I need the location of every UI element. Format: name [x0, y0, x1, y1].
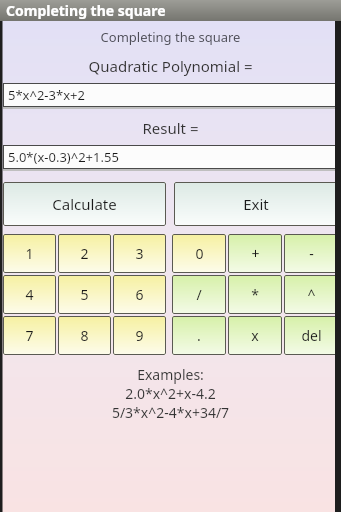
- staticText: *: [251, 285, 259, 304]
- staticText: 5.0*(x-0.3)^2+1.55: [8, 148, 119, 166]
- staticText: del: [301, 326, 322, 345]
- staticText: +: [251, 244, 260, 263]
- button[interactable]: 5.0*(x-0.3)^2+1.55: [3, 145, 338, 169]
- staticText: 8: [80, 326, 89, 345]
- staticText: 5: [80, 285, 89, 304]
- staticText: 7: [25, 326, 34, 345]
- staticText: 6: [135, 285, 144, 304]
- button[interactable]: 8: [58, 316, 111, 355]
- button[interactable]: 6: [113, 275, 166, 314]
- staticText: .: [197, 326, 201, 345]
- button[interactable]: 2: [58, 234, 111, 273]
- button[interactable]: 5*x^2-3*x+2: [3, 83, 338, 107]
- staticText: Completing the square: [3, 28, 338, 46]
- button[interactable]: Exit: [174, 182, 338, 226]
- staticText: 2: [80, 244, 89, 263]
- button[interactable]: 9: [113, 316, 166, 355]
- button[interactable]: Calculate: [3, 182, 166, 226]
- button[interactable]: /: [172, 275, 226, 314]
- button[interactable]: *: [228, 275, 282, 314]
- button[interactable]: -: [284, 234, 338, 273]
- staticText: Exit: [243, 194, 269, 214]
- staticText: 2.0*x^2+x-4.2: [3, 384, 338, 403]
- button[interactable]: ^: [284, 275, 338, 314]
- staticText: Result =: [3, 118, 338, 138]
- staticText: 9: [135, 326, 144, 345]
- staticText: Quadratic Polynomial =: [3, 56, 338, 76]
- button[interactable]: 5: [58, 275, 111, 314]
- button[interactable]: 7: [3, 316, 56, 355]
- staticText: 4: [25, 285, 34, 304]
- staticText: Calculate: [52, 194, 117, 214]
- button[interactable]: del: [284, 316, 338, 355]
- button[interactable]: 0: [172, 234, 226, 273]
- staticText: -: [309, 244, 314, 263]
- staticText: 0: [195, 244, 204, 263]
- button[interactable]: 1: [3, 234, 56, 273]
- staticText: /: [196, 285, 202, 304]
- button[interactable]: +: [228, 234, 282, 273]
- button[interactable]: x: [228, 316, 282, 355]
- button[interactable]: .: [172, 316, 226, 355]
- staticText: 5/3*x^2-4*x+34/7: [3, 403, 338, 422]
- staticText: 1: [25, 244, 34, 263]
- staticText: 3: [135, 244, 144, 263]
- staticText: ^: [307, 285, 316, 304]
- button[interactable]: 3: [113, 234, 166, 273]
- staticText: x: [251, 326, 259, 345]
- staticText: 5*x^2-3*x+2: [8, 86, 85, 104]
- button[interactable]: 4: [3, 275, 56, 314]
- staticText: Completing the square: [6, 1, 166, 20]
- staticText: Examples:: [3, 365, 338, 384]
